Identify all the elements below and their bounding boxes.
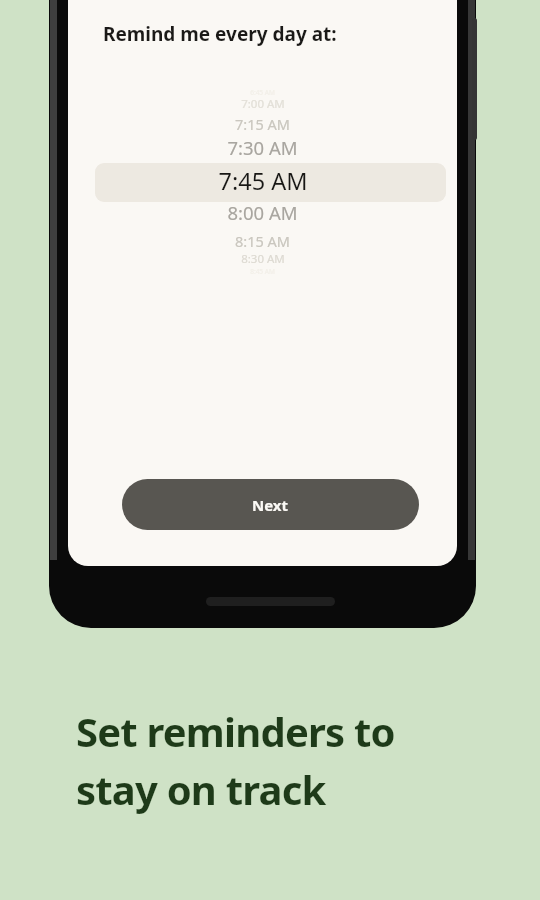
staticText: 8:30 AM [241,251,285,267]
staticText: 8:00 AM [227,200,298,225]
button[interactable]: 7:30 AM [68,132,457,163]
staticText: Next [252,495,289,515]
staticText: 7:30 AM [227,135,298,160]
button[interactable]: 7:00 AM [68,94,457,114]
button[interactable]: 7:45 AM [68,161,457,201]
staticText: Remind me every day at: [103,21,337,47]
button[interactable]: 8:15 AM [68,228,457,253]
button[interactable]: Next [122,479,419,530]
staticText: 8:15 AM [235,231,290,251]
staticText: 7:45 AM [218,165,308,197]
button[interactable]: 8:30 AM [68,249,457,269]
staticText: 8:45 AM [250,267,275,276]
staticText: stay on track [76,762,326,816]
button[interactable]: 7:15 AM [68,111,457,136]
staticText: 7:15 AM [235,114,290,134]
staticText: 7:00 AM [241,96,285,112]
staticText: Set reminders to [76,704,395,758]
button[interactable]: 8:00 AM [68,197,457,228]
staticText: 6:45 AM [250,88,275,97]
